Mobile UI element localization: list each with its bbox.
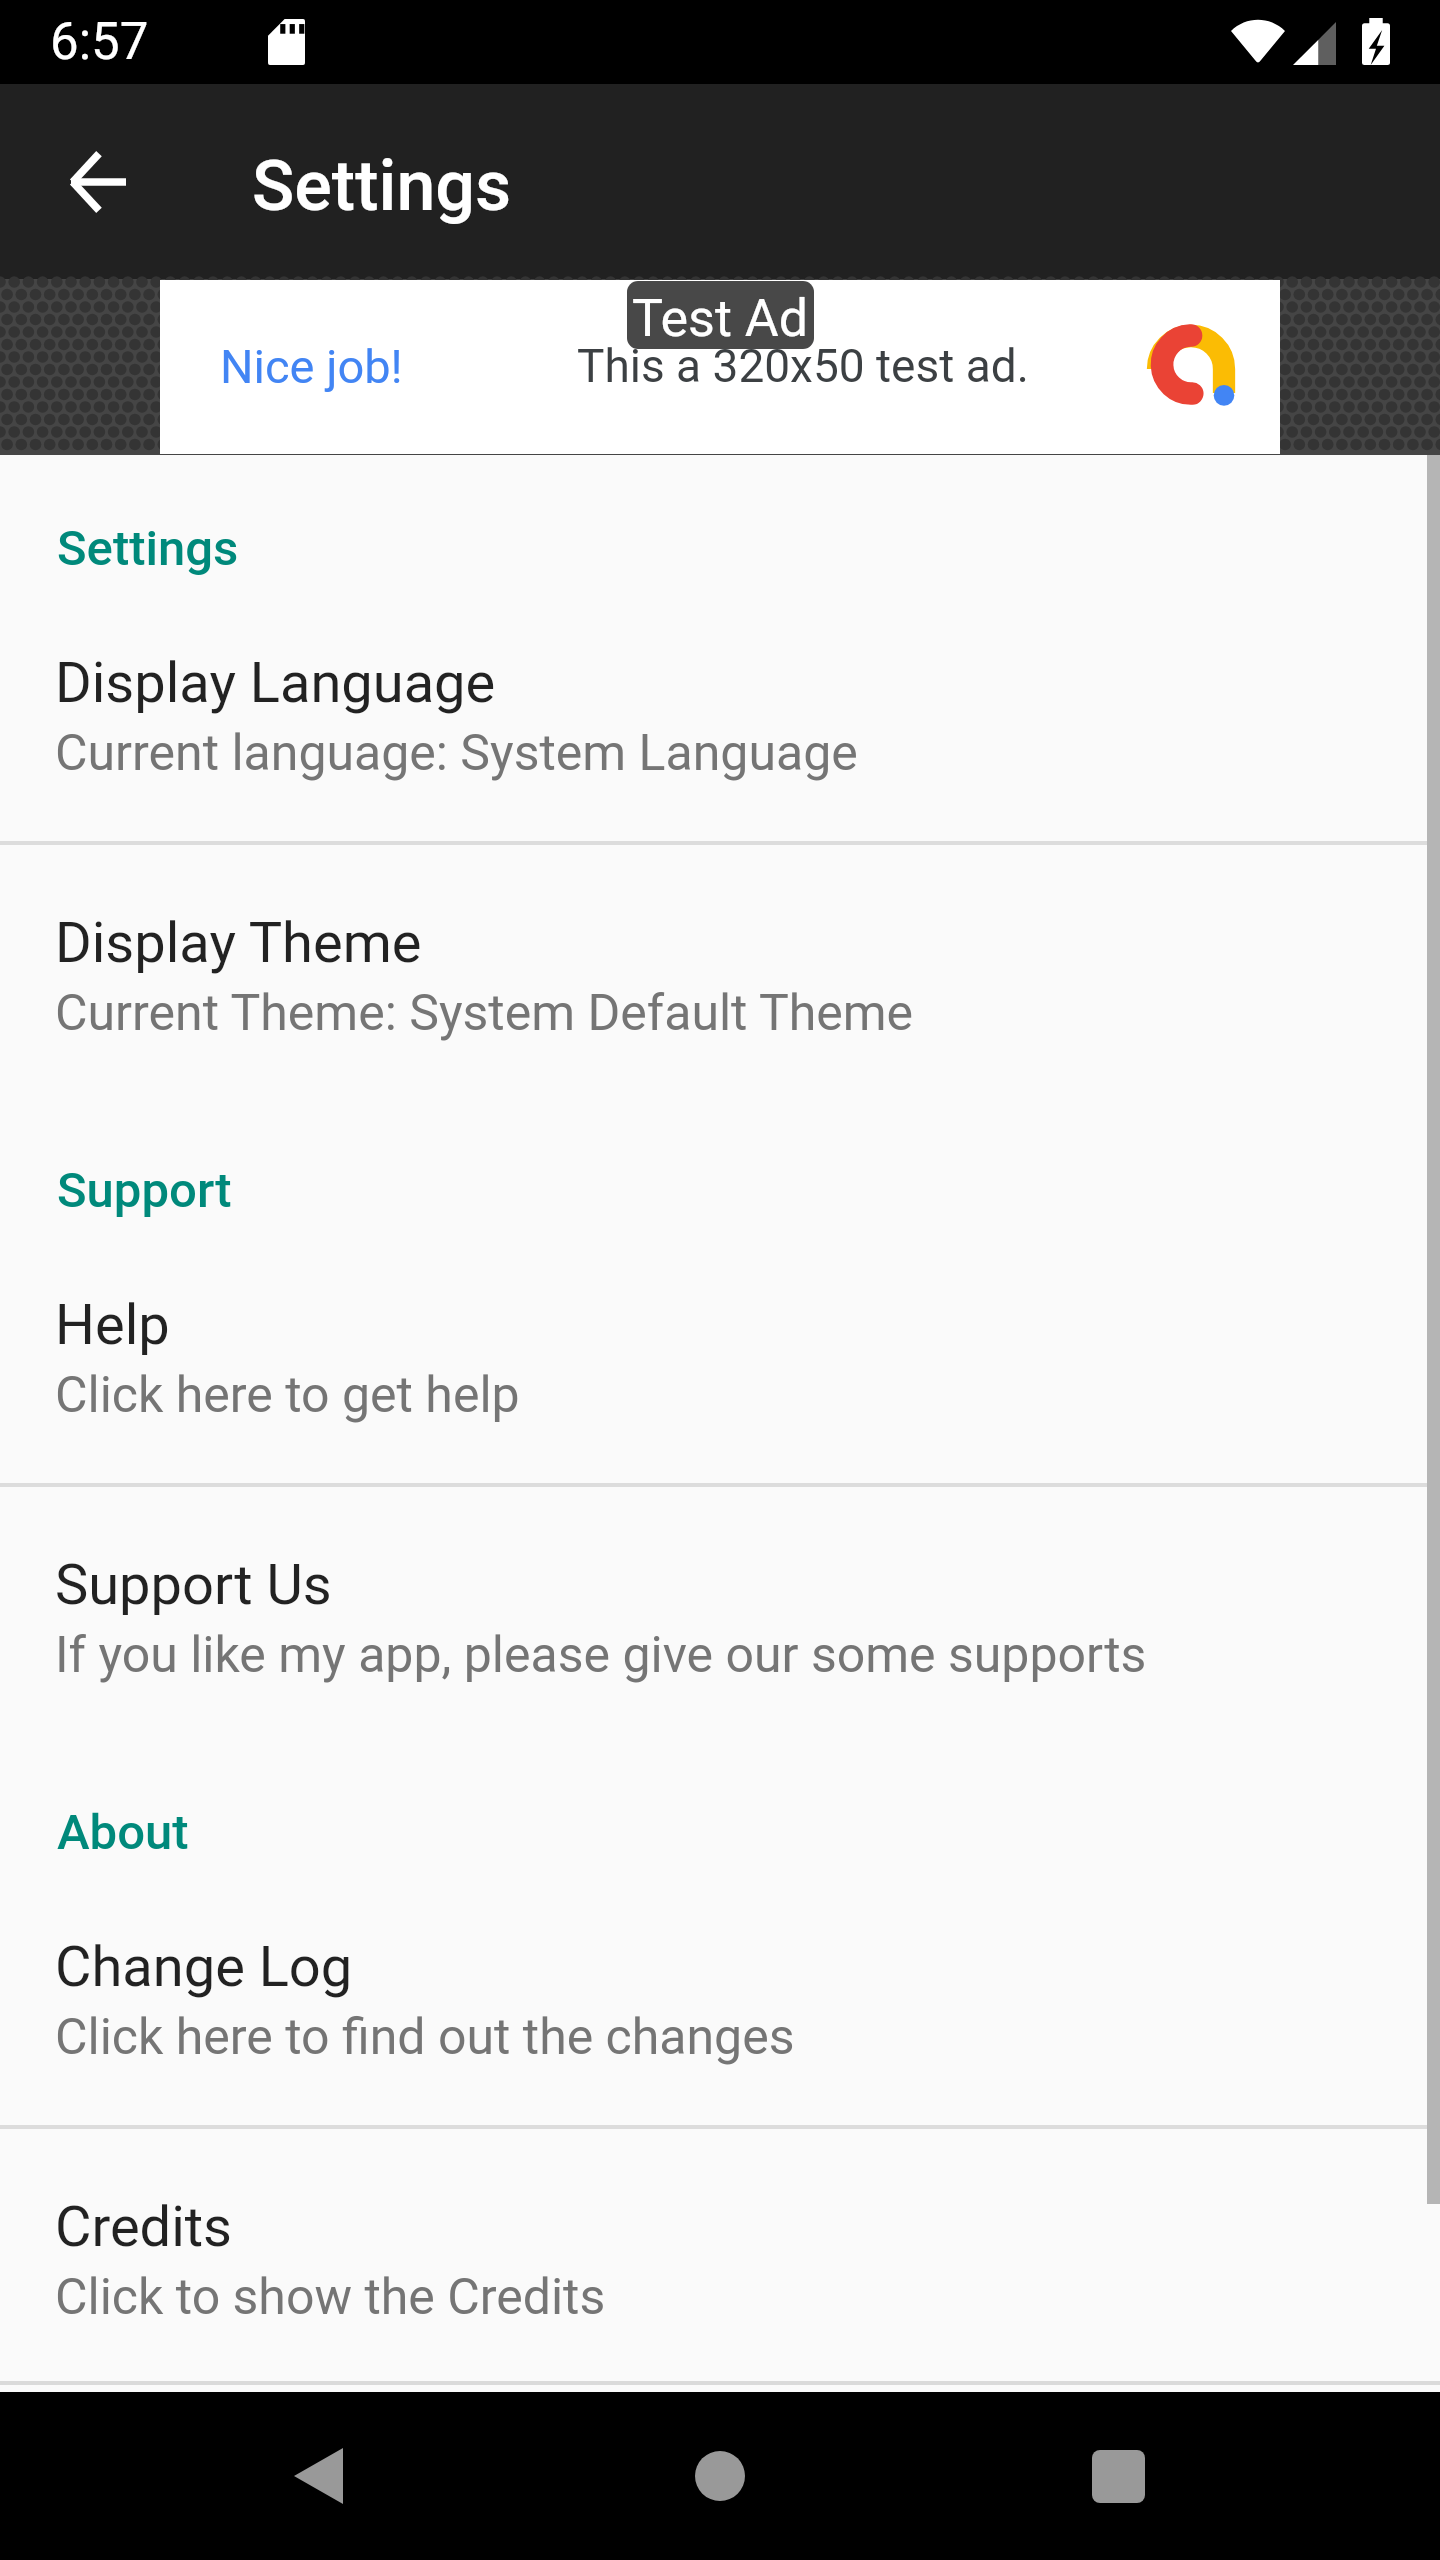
staticText: Credits [55, 2194, 233, 2260]
button[interactable]: Change Log [0, 1869, 1440, 2125]
staticText: Click here to find out the changes [55, 2008, 795, 2067]
staticText: Current Theme: System Default Theme [55, 984, 914, 1043]
staticText: Support Us [55, 1552, 332, 1618]
staticText: Change Log [55, 1934, 353, 2000]
button[interactable]: Support Us [0, 1487, 1440, 1739]
button[interactable]: Help [0, 1227, 1440, 1483]
staticText: Test Ad [632, 288, 809, 349]
button[interactable]: Display Theme [0, 845, 1440, 1097]
button[interactable]: Recent apps [1038, 2396, 1198, 2556]
staticText: Support [57, 1162, 232, 1219]
staticText: Settings [57, 520, 239, 577]
staticText: About [57, 1804, 189, 1861]
button[interactable]: Navigate up [42, 126, 154, 238]
staticText: Settings [252, 145, 512, 227]
staticText: Display Theme [55, 910, 422, 976]
button[interactable]: Back [238, 2396, 398, 2556]
staticText: Display Language [55, 650, 496, 716]
staticText: Current language: System Language [55, 724, 858, 783]
button[interactable]: Credits [0, 2129, 1440, 2381]
button[interactable]: Display Language [0, 585, 1440, 841]
button[interactable]: Home [640, 2396, 800, 2556]
staticText: 6:57 [50, 12, 149, 72]
staticText: Nice job! [220, 339, 403, 394]
staticText: Click here to get help [55, 1366, 520, 1425]
button[interactable]: Nice job! [160, 280, 1280, 454]
staticText: Help [55, 1292, 170, 1358]
staticText: Click to show the Credits [55, 2268, 606, 2327]
staticText: This a 320x50 test ad. [577, 339, 1029, 393]
staticText: If you like my app, please give our some… [55, 1626, 1147, 1685]
